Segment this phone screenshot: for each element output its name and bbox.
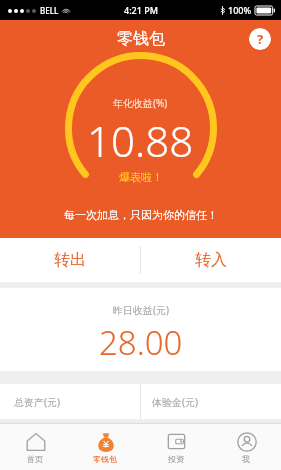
staticText: 10.88 (87, 112, 194, 169)
button[interactable]: 投资 (141, 424, 211, 470)
staticText: 年化收益(%) (113, 96, 168, 110)
staticText: 投资 (168, 454, 184, 464)
button[interactable]: 转出 (0, 238, 140, 282)
staticText: 零钱包 (117, 29, 165, 49)
staticText: 首页 (27, 454, 43, 464)
staticText: 昨日收益(元) (113, 303, 169, 317)
button[interactable]: 转入 (140, 238, 281, 282)
staticText: BELL (40, 5, 59, 16)
staticText: 每一次加息，只因为你的信任！ (64, 208, 218, 222)
staticText: 我 (242, 454, 250, 464)
staticText: 零钱包 (93, 454, 117, 464)
staticText: 28.00 (99, 320, 183, 365)
button[interactable]: 总资产(元) (0, 384, 140, 419)
staticText: 转出 (54, 250, 86, 270)
staticText: 爆表啦！ (119, 170, 163, 184)
staticText: 4:21 PM (124, 4, 158, 16)
button[interactable]: 首页 (0, 424, 70, 470)
staticText: 100% (228, 4, 252, 16)
button[interactable]: Help (249, 28, 271, 50)
button[interactable]: 零钱包 (70, 424, 140, 470)
button[interactable]: 我 (211, 424, 281, 470)
staticText: ? (257, 30, 264, 48)
staticText: 转入 (195, 250, 227, 270)
staticText: 体验金(元) (152, 395, 198, 409)
staticText: 总资产(元) (14, 395, 60, 409)
button[interactable]: 体验金(元) (140, 384, 281, 419)
